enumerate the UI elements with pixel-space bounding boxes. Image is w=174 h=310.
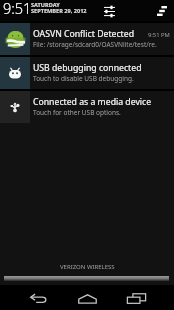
- staticText: OASVN Conflict Detected: [33, 28, 148, 40]
- staticText: Touch for other USB options.: [33, 108, 121, 117]
- staticText: SATURDAY: [31, 1, 60, 9]
- staticText: Touch to disable USB debugging.: [33, 74, 134, 83]
- staticText: File: /storage/sdcard0/OASVNlite/test/re…: [33, 40, 157, 49]
- button[interactable]: OASVN Conflict Detected: [0, 23, 174, 55]
- staticText: VERIZON WIRELESS: [60, 263, 115, 271]
- button[interactable]: Recent apps: [122, 286, 150, 310]
- button[interactable]: Clear all notifications: [154, 3, 170, 19]
- staticText: Connected as a media device: [33, 96, 171, 108]
- staticText: USB debugging connected: [33, 62, 171, 74]
- staticText: SEPTEMBER 29, 2012: [31, 7, 87, 15]
- button[interactable]: Quick settings: [101, 3, 117, 19]
- staticText: 9:51: [3, 0, 32, 18]
- button[interactable]: Back: [24, 286, 52, 310]
- button[interactable]: Home: [73, 286, 101, 310]
- button[interactable]: USB debugging connected: [0, 57, 174, 89]
- button[interactable]: Connected as a media device: [0, 91, 174, 123]
- staticText: 9:51 PM: [148, 31, 170, 39]
